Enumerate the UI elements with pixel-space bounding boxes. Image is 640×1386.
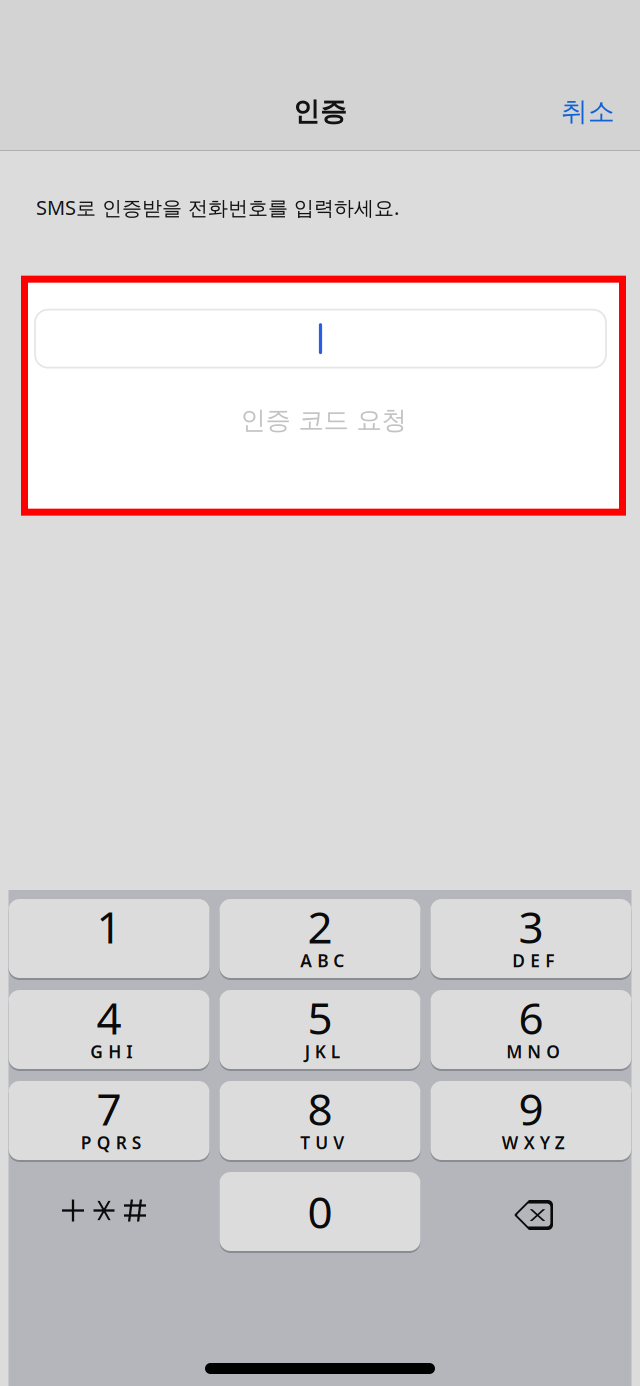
button[interactable]: 5 [219, 990, 420, 1069]
staticText: 7 [96, 1079, 121, 1138]
staticText: ABC [300, 949, 344, 972]
staticText: 6 [518, 988, 543, 1047]
button[interactable]: 2 [219, 899, 420, 978]
staticText: 9 [518, 1079, 543, 1138]
staticText: GHI [90, 1040, 132, 1063]
staticText: JKL [305, 1040, 340, 1063]
button[interactable]: 인증 코드 요청 [28, 391, 619, 450]
staticText: 인증 코드 요청 [240, 405, 406, 436]
staticText: 3 [518, 897, 543, 956]
staticText: 5 [307, 988, 332, 1047]
button[interactable]: Delete [430, 1172, 631, 1251]
staticText: 0 [307, 1182, 332, 1241]
button[interactable]: 취소 [543, 83, 640, 140]
button[interactable]: 4 [8, 990, 209, 1069]
staticText: 8 [307, 1079, 332, 1138]
staticText: 1 [96, 897, 121, 956]
staticText: 2 [307, 897, 332, 956]
button[interactable]: Plus, star, pound [8, 1172, 209, 1251]
staticText: PQRS [81, 1131, 142, 1154]
button[interactable]: 0 [219, 1172, 420, 1251]
button[interactable]: 8 [219, 1081, 420, 1160]
button[interactable]: 6 [430, 990, 631, 1069]
staticText: SMS로 인증받을 전화번호를 입력하세요. [36, 194, 399, 221]
staticText: MNO [506, 1040, 560, 1063]
staticText: TUV [300, 1131, 344, 1154]
staticText: DEF [512, 949, 554, 972]
staticText: WXYZ [502, 1131, 565, 1154]
button[interactable]: 9 [430, 1081, 631, 1160]
button[interactable]: 3 [430, 899, 631, 978]
staticText: 취소 [561, 95, 615, 128]
button[interactable]: 7 [8, 1081, 209, 1160]
button[interactable]: 1 [8, 899, 209, 978]
staticText: 4 [96, 988, 121, 1047]
button[interactable]: 전화번호 [35, 310, 606, 368]
staticText: 인증 [293, 95, 347, 128]
